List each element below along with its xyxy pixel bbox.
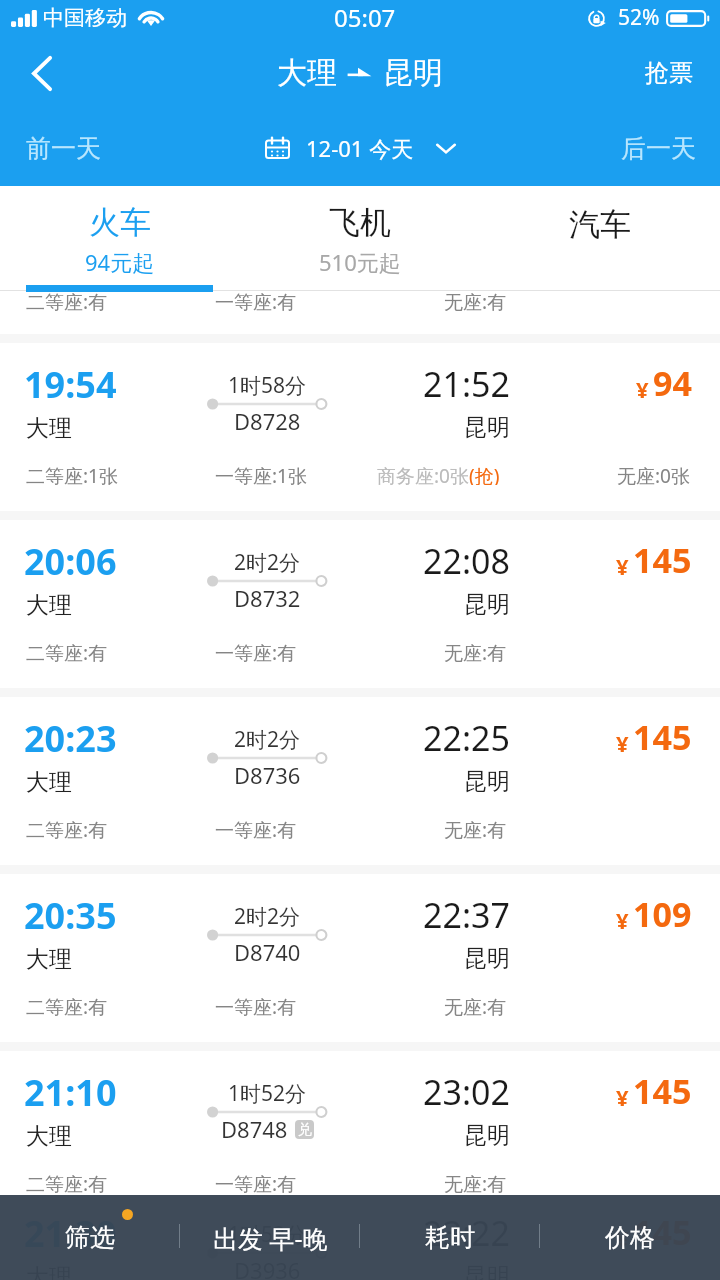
button[interactable]: 价格 (540, 1195, 720, 1280)
staticText: 昆明 (383, 54, 443, 92)
staticText: 12-01 今天 (306, 133, 414, 163)
staticText: 中国移动 (43, 5, 127, 31)
staticText: 昆明 (464, 1121, 510, 1150)
staticText: 无座:有 (444, 1171, 507, 1193)
button[interactable]: 前一天 (0, 121, 121, 176)
staticText: 大理 (26, 945, 72, 974)
staticText: D8748 (221, 1114, 288, 1144)
staticText: 兑 (298, 1121, 312, 1139)
staticText: 商务座:0张 (377, 463, 469, 485)
staticText: 筛选 (65, 1222, 115, 1253)
staticText: 二等座:有 (26, 1171, 108, 1193)
staticText: 昆明 (464, 944, 510, 973)
staticText: 2时2分 (234, 548, 301, 577)
button[interactable]: 后一天 (601, 121, 720, 176)
staticText: 二等座:有 (26, 817, 108, 839)
staticText: 抢票 (645, 58, 693, 88)
staticText: 后一天 (621, 133, 696, 164)
staticText: ¥ (636, 374, 649, 404)
staticText: 145 (633, 537, 692, 583)
staticText: 52% (618, 3, 660, 32)
button[interactable]: 20:35 (0, 874, 720, 1042)
staticText: 飞机 (329, 203, 391, 242)
staticText: 火车 (89, 203, 151, 242)
staticText: 二等座:1张 (26, 463, 118, 485)
staticText: 大理 (26, 1122, 72, 1151)
staticText: 94元起 (85, 247, 155, 277)
button[interactable]: 20:23 (0, 697, 720, 865)
staticText: 05:07 (334, 1, 396, 34)
button[interactable]: 12-01 今天 (259, 125, 462, 171)
staticText: 109 (633, 891, 692, 937)
staticText: 22:25 (423, 715, 510, 761)
staticText: ¥ (616, 1082, 629, 1112)
staticText: 无座:有 (444, 640, 507, 662)
staticText: 1时52分 (228, 1220, 307, 1249)
staticText: 一等座:有 (215, 640, 297, 662)
button[interactable]: 抢票 (620, 46, 720, 100)
staticText: D8728 (234, 406, 301, 436)
button[interactable]: Back (0, 41, 84, 105)
staticText: 价格 (605, 1222, 655, 1253)
staticText: 21:10 (24, 1068, 117, 1117)
staticText: 大理 (26, 768, 72, 797)
staticText: 20:06 (24, 537, 117, 586)
staticText: 23:02 (423, 1069, 510, 1115)
staticText: 无座:有 (444, 289, 507, 311)
staticText: 2时2分 (234, 902, 301, 931)
staticText: 一等座:有 (215, 994, 297, 1016)
staticText: 昆明 (464, 413, 510, 442)
staticText: 145 (633, 1068, 692, 1114)
button[interactable]: 21:10 (0, 1051, 720, 1219)
staticText: ¥ (616, 905, 629, 935)
staticText: 510元起 (319, 247, 401, 277)
staticText: 一等座:有 (215, 817, 297, 839)
staticText: 22:08 (423, 538, 510, 584)
staticText: 21:52 (423, 361, 510, 407)
button[interactable]: 出发 早-晚 (180, 1195, 360, 1280)
staticText: 二等座:有 (26, 289, 108, 311)
button[interactable]: 21:30 (0, 1228, 720, 1280)
staticText: D8732 (234, 583, 301, 613)
button[interactable]: 汽车 (480, 186, 720, 292)
staticText: 94 (653, 360, 692, 406)
staticText: 二等座:有 (26, 994, 108, 1016)
staticText: 无座:有 (444, 817, 507, 839)
button[interactable]: 20:06 (0, 520, 720, 688)
button[interactable]: 19:54 (0, 343, 720, 511)
staticText: 出发 早-晚 (213, 1221, 328, 1255)
staticText: 昆明 (464, 590, 510, 619)
staticText: 一等座:有 (215, 1171, 297, 1193)
staticText: ¥ (616, 1223, 629, 1253)
staticText: 无座:0张 (617, 463, 690, 485)
button[interactable]: 飞机 (240, 186, 480, 292)
staticText: 1时58分 (228, 371, 307, 400)
staticText: 汽车 (569, 205, 631, 244)
staticText: (抢) (469, 463, 500, 485)
staticText: 大理 (26, 414, 72, 443)
staticText: 昆明 (464, 767, 510, 796)
staticText: 一等座:有 (215, 289, 297, 311)
staticText: 1时52分 (228, 1079, 307, 1108)
staticText: 耗时 (425, 1222, 475, 1253)
button[interactable]: 火车 (0, 186, 240, 292)
staticText: 22:37 (423, 892, 510, 938)
staticText: 2时2分 (234, 725, 301, 754)
button[interactable]: 筛选 (0, 1195, 180, 1280)
staticText: 23:22 (423, 1210, 510, 1256)
staticText: 20:23 (24, 714, 117, 763)
staticText: D8736 (234, 760, 301, 790)
staticText: 前一天 (26, 133, 101, 164)
button[interactable]: 耗时 (360, 1195, 540, 1280)
staticText: 19:54 (24, 360, 117, 409)
staticText: 一等座:1张 (215, 463, 307, 485)
staticText: ¥ (616, 551, 629, 581)
staticText: 无座:有 (444, 994, 507, 1016)
staticText: D8740 (234, 937, 301, 967)
staticText: 大理 (277, 54, 337, 92)
staticText: 20:35 (24, 891, 117, 940)
staticText: 大理 (26, 591, 72, 620)
staticText: ¥ (616, 728, 629, 758)
